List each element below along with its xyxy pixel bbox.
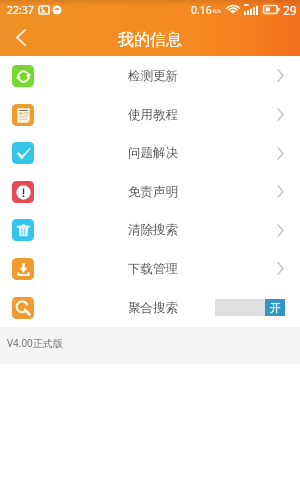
staticText: 使用教程 (128, 107, 178, 123)
button[interactable]: 免责声明 (0, 172, 300, 211)
button[interactable]: 下载管理 (0, 249, 300, 288)
staticText: 开 (270, 301, 281, 315)
staticText: K/s (213, 7, 222, 14)
staticText: 29 (283, 2, 297, 18)
staticText: 下载管理 (128, 261, 178, 277)
staticText: 问题解决 (128, 145, 178, 161)
staticText: 检测更新 (128, 68, 178, 84)
button[interactable]: 使用教程 (0, 95, 300, 134)
button[interactable]: 问题解决 (0, 134, 300, 172)
button[interactable]: 开 (215, 299, 285, 316)
staticText: V4.00正式版 (7, 336, 63, 350)
button[interactable]: 清除搜索 (0, 211, 300, 249)
button[interactable]: 检测更新 (0, 56, 300, 95)
button[interactable]: Back (0, 19, 41, 56)
staticText: 22:37 (7, 3, 34, 17)
staticText: 清除搜索 (128, 222, 178, 238)
staticText: 免责声明 (128, 184, 178, 200)
button[interactable]: 聚合搜索 (0, 288, 300, 327)
staticText: 0.16 (191, 3, 212, 17)
staticText: 聚合搜索 (128, 300, 178, 316)
staticText: 我的信息 (118, 30, 182, 50)
